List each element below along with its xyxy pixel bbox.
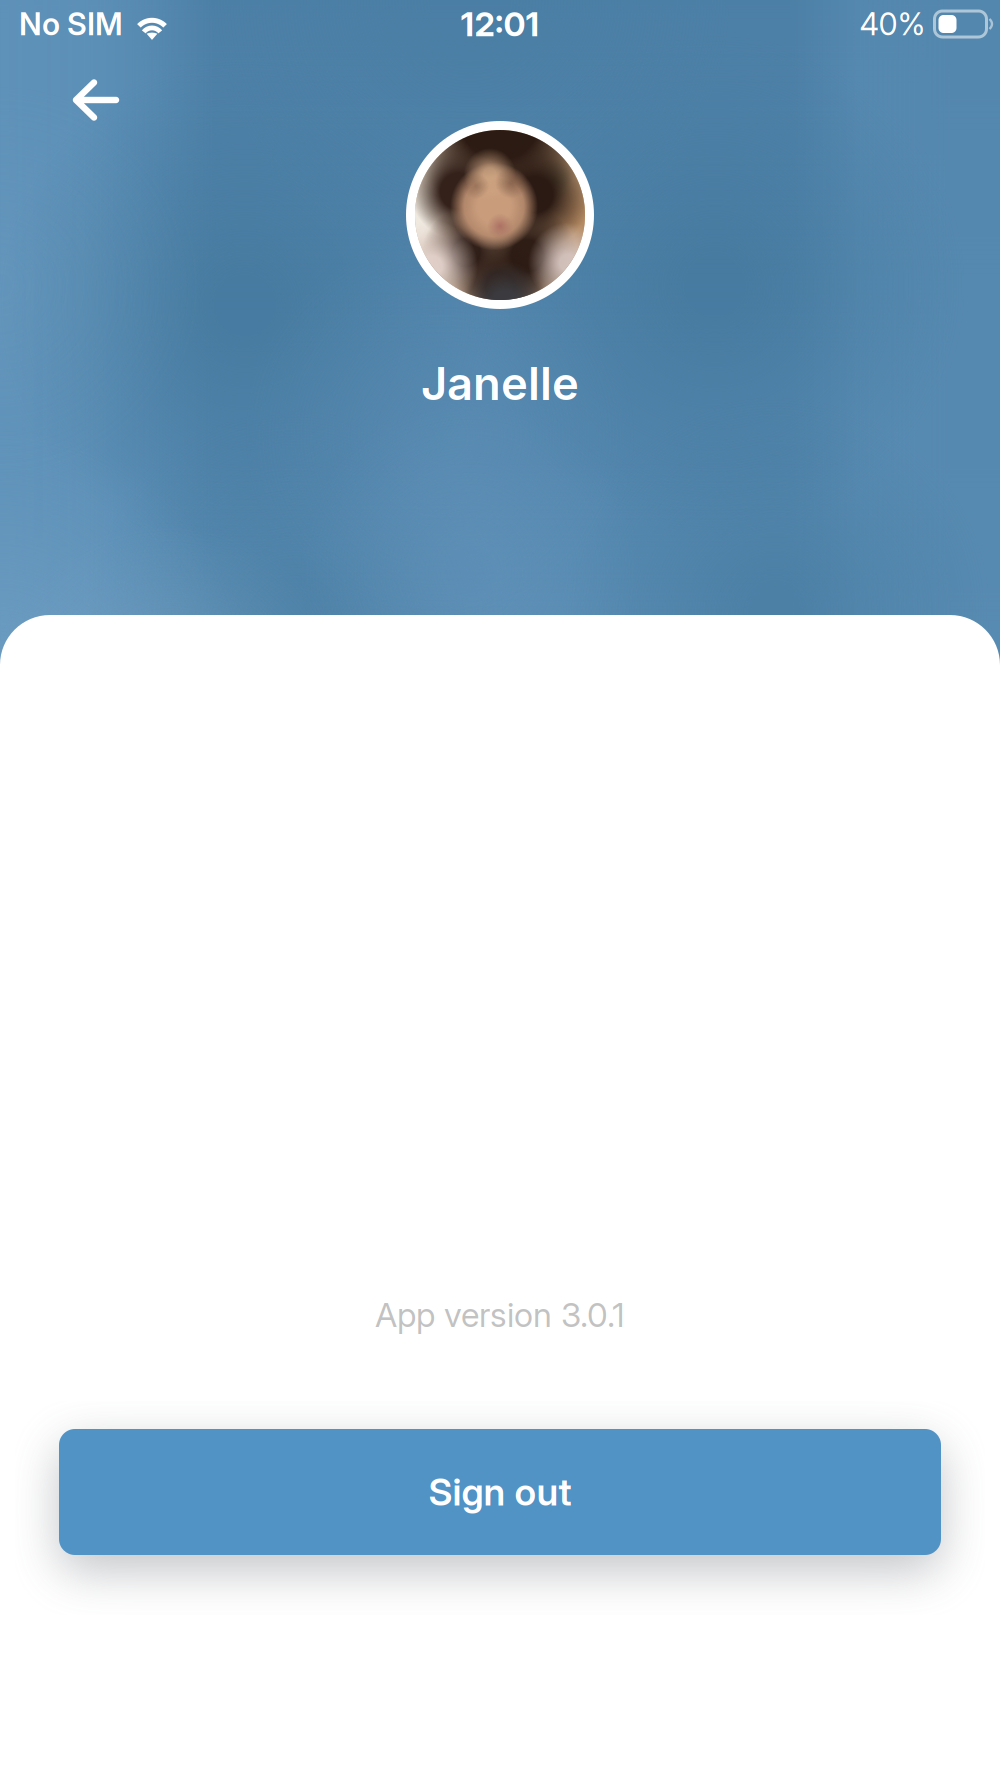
staticText: App version 3.0.1	[375, 1295, 625, 1335]
staticText: 40%	[859, 5, 925, 42]
staticText: Janelle	[421, 356, 579, 411]
button[interactable]: Back	[0, 61, 146, 139]
staticText: 12:01	[460, 4, 539, 44]
staticText: No SIM	[19, 5, 123, 42]
staticText: Sign out	[428, 1469, 571, 1515]
button[interactable]: Sign out	[59, 1429, 941, 1555]
